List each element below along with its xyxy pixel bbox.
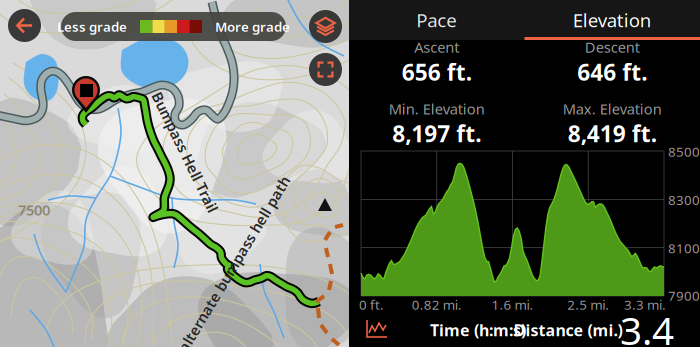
staticText: 8500	[668, 143, 700, 160]
staticText: 7500	[18, 200, 50, 219]
staticText: 646 ft.	[577, 57, 647, 87]
staticText: Ascent	[414, 37, 459, 57]
staticText: 0 ft.	[359, 296, 384, 313]
staticText: 8100	[668, 239, 700, 257]
staticText: Time (h:m:s)	[430, 319, 526, 341]
staticText: 3.4	[620, 304, 674, 347]
staticText: Elevation	[573, 8, 652, 32]
staticText: More grade	[215, 18, 290, 35]
button[interactable]: Less grade	[61, 12, 286, 41]
button[interactable]: Chart type	[366, 319, 388, 339]
staticText: 0.82 mi.	[412, 296, 462, 313]
staticText: 656 ft.	[402, 57, 472, 87]
staticText: 3.3 mi.	[624, 296, 666, 313]
button[interactable]: Elevation	[524, 0, 700, 40]
button[interactable]: Full screen	[309, 53, 342, 86]
staticText: Descent	[585, 37, 640, 57]
staticText: Pace	[416, 8, 457, 32]
staticText: 1.6 mi.	[491, 296, 533, 313]
button[interactable]: Back	[8, 9, 41, 42]
staticText: 8300	[668, 191, 700, 209]
button[interactable]: Pace	[349, 0, 524, 40]
staticText: Min. Elevation	[389, 99, 485, 118]
staticText: 7900	[668, 287, 700, 304]
staticText: Distance (mi.)	[513, 319, 622, 341]
staticText: 2.5 mi.	[567, 296, 609, 313]
staticText: 8,197 ft.	[392, 118, 481, 149]
staticText: Max. Elevation	[563, 99, 662, 118]
staticText: Bumpass Hell Trail	[119, 142, 251, 162]
button[interactable]: Map layers	[309, 10, 342, 43]
staticText: alternate bumpass hell path	[133, 254, 335, 274]
staticText: Less grade	[57, 18, 127, 35]
staticText: 8,419 ft.	[568, 118, 657, 149]
